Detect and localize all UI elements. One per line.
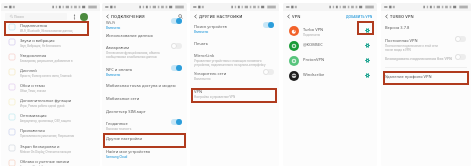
staticText: Samsung Cloud (106, 155, 128, 159)
staticText: Мобильная точка доступа и модем (106, 83, 176, 88)
button[interactable]: VPN settings (365, 28, 370, 33)
button[interactable]: Мобильная точка доступа и модем (102, 79, 187, 90)
staticText: Samsung Cloud, Архивация и восстановлени… (20, 165, 78, 166)
button[interactable]: Удаление профиля VPN (381, 70, 471, 81)
button[interactable]: Turbo VPN (283, 23, 377, 38)
button[interactable]: Оптимизация (1, 109, 100, 124)
button[interactable]: Диспетчер SIM-карт (102, 105, 187, 116)
button[interactable]: @KOMSEC (283, 38, 377, 53)
staticText: Wi-Fi, Bluetooth, Использование данных, … (20, 29, 78, 33)
staticText: Блокировать подключения без VPN (385, 56, 452, 61)
staticText: Мобильные сети (106, 96, 140, 101)
staticText: Диспетчер SIM-карт (106, 109, 146, 114)
button[interactable]: Экран блокировки и безопасность (1, 140, 100, 155)
button[interactable]: Profile (80, 13, 88, 21)
staticText: VPN (194, 89, 203, 94)
button[interactable]: Дополнительные функции (1, 94, 100, 109)
staticText: ДОБАВИТЬ VPN (346, 14, 373, 18)
staticText: ProtonVPN (303, 57, 324, 62)
button[interactable]: Геоданные (102, 117, 187, 131)
button[interactable]: VPN settings (365, 43, 370, 48)
staticText: Найти мое устройство (106, 149, 151, 154)
button[interactable]: Wi-Fi (102, 16, 187, 30)
staticText: Wi-Fi (106, 20, 116, 25)
staticText: Управление устройством с помощью головно… (194, 59, 266, 67)
staticText: Обои и темы (20, 83, 45, 88)
staticText: Turbo VPN (303, 27, 324, 32)
button[interactable]: Поиск устройств (190, 20, 279, 34)
button[interactable]: Версия 3.7.8 (381, 21, 471, 32)
button[interactable]: VPN settings (365, 73, 370, 78)
staticText: Ускоритель сети (194, 71, 227, 76)
staticText: Аккумулятор, хранилище, ОЗУ, защита устр… (20, 119, 78, 123)
button[interactable]: Звуки и вибрация (1, 34, 100, 49)
staticText: Поиск устройств (194, 24, 227, 29)
staticText: Геоданные (106, 121, 128, 126)
staticText: Игры, Режим работы одной рукой (20, 104, 65, 108)
staticText: Подключения (20, 23, 47, 28)
staticText: Облако и учетные записи (20, 159, 70, 164)
staticText: Включено (106, 73, 121, 77)
staticText: Приложения (20, 128, 45, 133)
staticText: Блокировка, разрешение, добавление в при… (20, 59, 78, 63)
button[interactable]: Постоянная VPN (381, 34, 471, 48)
button[interactable]: Уведомления (1, 49, 100, 64)
button[interactable]: ДОБАВИТЬ VPN (346, 14, 373, 18)
staticText: Оптимизация (20, 113, 47, 118)
staticText: Windscribe (303, 72, 325, 77)
button[interactable]: MirrorLink (190, 49, 279, 63)
staticText: ДРУГИЕ НАСТРОЙКИ (199, 14, 243, 19)
other: Back (286, 14, 291, 19)
button[interactable]: Найти мое устройство (102, 145, 187, 159)
staticText: Дополнительные функции (20, 98, 72, 103)
staticText: Версия 3.7.8 (385, 25, 410, 30)
staticText: Высокая точность (106, 127, 132, 131)
staticText: Уведомления (20, 53, 47, 58)
staticText: Звуки и вибрация (20, 38, 55, 43)
staticText: Яркость, Фильтр синего света, Главный эк… (20, 74, 78, 78)
staticText: Включено (106, 26, 121, 30)
button[interactable]: Мобильные сети (102, 92, 187, 103)
staticText: Дисплей (20, 68, 37, 73)
button[interactable]: Авиарежим (102, 41, 187, 55)
staticText: Выключено (194, 77, 211, 81)
staticText: Другие настройки (106, 136, 142, 141)
button[interactable]: Обои и темы (1, 79, 100, 94)
staticText: NFC и оплата (106, 67, 133, 72)
button[interactable]: Ускоритель сети (190, 67, 279, 81)
button[interactable]: Windscribe (283, 68, 377, 83)
staticText: ПОДКЛЮЧЕНИЯ (111, 14, 145, 19)
other: Back (105, 14, 110, 19)
staticText: Отключение функций вызова, обмена сообще… (106, 51, 160, 59)
staticText: Мэйсон On Display, Отпечатки пальцев (20, 150, 71, 154)
button[interactable]: Поиск (5, 13, 67, 20)
button[interactable]: Использование данных (102, 29, 187, 40)
other: Back (193, 14, 198, 19)
button[interactable]: Приложения (1, 124, 100, 139)
staticText: Авиарежим (106, 45, 130, 50)
button[interactable]: More options (73, 14, 76, 20)
other: Back (384, 14, 389, 19)
staticText: Удаление профиля VPN (385, 74, 432, 79)
button[interactable]: Дисплей (1, 64, 100, 79)
staticText: Постоянное подключение к этой сети после… (385, 44, 438, 52)
staticText: Подключено (303, 33, 321, 37)
button[interactable]: VPN settings (365, 58, 370, 63)
staticText: Поиск (14, 14, 25, 19)
staticText: Настройка и управление VPN (194, 95, 236, 99)
staticText: Использование данных (106, 33, 153, 38)
staticText: Включено (194, 30, 209, 34)
staticText: Экран блокировки и безопасность (20, 144, 78, 149)
button[interactable]: Подключения (1, 19, 100, 34)
button[interactable]: Печать (190, 37, 279, 48)
button[interactable]: Другие настройки (102, 132, 187, 143)
button[interactable]: NFC и оплата (102, 63, 187, 77)
button[interactable]: Блокировать подключения без VPN (381, 52, 471, 63)
button[interactable]: ProtonVPN (283, 53, 377, 68)
button[interactable]: Облако и учетные записи (1, 155, 100, 166)
button[interactable]: VPN (190, 85, 279, 99)
button[interactable]: Search (178, 14, 183, 19)
staticText: MirrorLink (194, 53, 215, 58)
staticText: VPN (292, 14, 301, 19)
staticText: Приложения по умолчанию, Разрешения прил… (20, 134, 78, 138)
